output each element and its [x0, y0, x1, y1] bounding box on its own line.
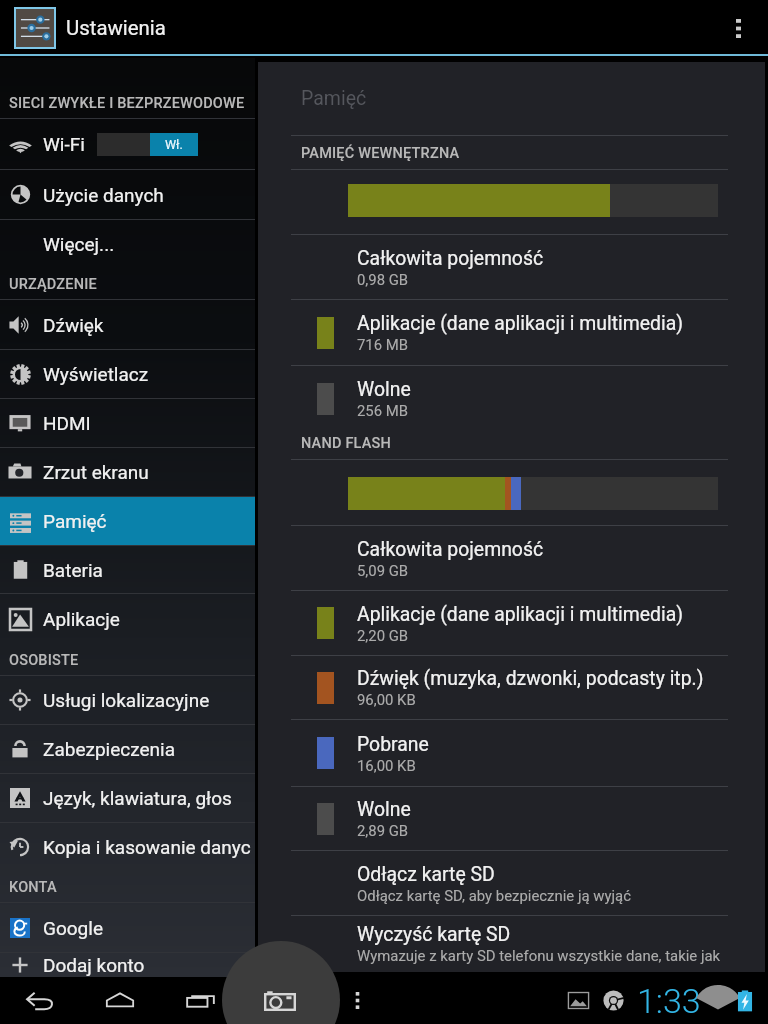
- staticText: Pamięć: [301, 87, 367, 110]
- button[interactable]: HDMI: [0, 399, 255, 447]
- staticText: Aplikacje (dane aplikacji i multimedia): [357, 603, 683, 626]
- staticText: Aplikacje (dane aplikacji i multimedia): [357, 312, 683, 335]
- staticText: Wolne: [357, 378, 411, 401]
- button[interactable]: Camera: [256, 977, 304, 1024]
- button[interactable]: Kopia i kasowanie danyc: [0, 823, 255, 871]
- button[interactable]: Dodaj konto: [0, 953, 255, 977]
- button[interactable]: Użycie danych: [0, 170, 255, 219]
- staticText: 2,20 GB: [357, 627, 409, 644]
- staticText: 16,00 KB: [357, 757, 416, 774]
- staticText: Google: [43, 917, 103, 939]
- staticText: Wi-Fi: [43, 133, 85, 155]
- staticText: Odłącz kartę SD, aby bezpiecznie ją wyją…: [357, 887, 631, 904]
- staticText: Wł.: [165, 137, 183, 152]
- staticText: Całkowita pojemność: [357, 538, 544, 561]
- staticText: Zabezpieczenia: [43, 738, 175, 760]
- staticText: Pobrane: [357, 733, 429, 756]
- staticText: HDMI: [43, 412, 91, 434]
- button[interactable]: Usługi lokalizacyjne: [0, 676, 255, 724]
- staticText: Wyczyść kartę SD: [357, 923, 511, 946]
- staticText: Bateria: [43, 559, 103, 581]
- button[interactable]: Wł.: [97, 133, 198, 156]
- button[interactable]: Pobrane: [258, 720, 765, 786]
- button[interactable]: Wolne: [258, 787, 765, 850]
- button[interactable]: Zabezpieczenia: [0, 725, 255, 773]
- button[interactable]: Settings: [16, 9, 54, 47]
- button[interactable]: Home: [96, 977, 144, 1024]
- staticText: SIECI ZWYKŁE I BEZPRZEWODOWE: [9, 95, 245, 112]
- button[interactable]: Recent apps: [176, 977, 224, 1024]
- staticText: 2,89 GB: [357, 822, 409, 839]
- button[interactable]: Wi-Fi: [0, 119, 255, 169]
- button[interactable]: Bateria: [0, 546, 255, 593]
- button[interactable]: Google: [0, 903, 255, 952]
- staticText: Dodaj konto: [43, 954, 145, 976]
- staticText: Ustawienia: [66, 16, 166, 40]
- staticText: Usługi lokalizacyjne: [43, 689, 210, 711]
- staticText: 716 MB: [357, 336, 409, 353]
- staticText: Odłącz kartę SD: [357, 863, 495, 886]
- staticText: Pamięć: [43, 510, 107, 532]
- staticText: 96,00 KB: [357, 691, 416, 708]
- staticText: Kopia i kasowanie danyc: [43, 836, 251, 858]
- staticText: KONTA: [9, 879, 57, 896]
- staticText: 1:33: [637, 981, 701, 1021]
- button[interactable]: More options: [720, 10, 756, 46]
- staticText: Zrzut ekranu: [43, 461, 149, 483]
- staticText: Dźwięk: [43, 314, 104, 336]
- button[interactable]: Całkowita pojemność: [258, 235, 765, 299]
- button[interactable]: Back: [15, 977, 63, 1024]
- staticText: Całkowita pojemność: [357, 247, 544, 270]
- button[interactable]: Dźwięk: [0, 300, 255, 349]
- button[interactable]: Wyczyść kartę SD: [258, 916, 765, 970]
- staticText: Użycie danych: [43, 184, 164, 206]
- button[interactable]: Dźwięk (muzyka, dzwonki, podcasty itp.): [258, 656, 765, 719]
- staticText: Wymazuje z karty SD telefonu wszystkie d…: [357, 947, 721, 964]
- button[interactable]: Więcej...: [0, 220, 255, 268]
- staticText: Więcej...: [43, 233, 115, 255]
- staticText: Wyświetlacz: [43, 363, 149, 385]
- staticText: Język, klawiatura, głos: [43, 787, 232, 809]
- staticText: Wolne: [357, 798, 411, 821]
- button[interactable]: Pamięć: [0, 497, 255, 545]
- button[interactable]: Aplikacje (dane aplikacji i multimedia): [258, 300, 765, 365]
- staticText: OSOBISTE: [9, 652, 79, 669]
- staticText: 256 MB: [357, 402, 409, 419]
- staticText: Aplikacje: [43, 608, 120, 630]
- button[interactable]: Język, klawiatura, głos: [0, 774, 255, 822]
- staticText: Dźwięk (muzyka, dzwonki, podcasty itp.): [357, 667, 704, 690]
- staticText: 0,98 GB: [357, 271, 409, 288]
- button[interactable]: Zrzut ekranu: [0, 448, 255, 496]
- button[interactable]: Menu: [333, 977, 381, 1024]
- staticText: NAND FLASH: [301, 435, 392, 452]
- staticText: 5,09 GB: [357, 562, 409, 579]
- button[interactable]: Aplikacje (dane aplikacji i multimedia): [258, 591, 765, 655]
- staticText: PAMIĘĆ WEWNĘTRZNA: [301, 145, 460, 162]
- staticText: URZĄDZENIE: [9, 276, 97, 293]
- button[interactable]: Aplikacje: [0, 594, 255, 644]
- button[interactable]: Wolne: [258, 366, 765, 431]
- button[interactable]: Wyświetlacz: [0, 350, 255, 398]
- button[interactable]: Odłącz kartę SD: [258, 851, 765, 915]
- button[interactable]: Całkowita pojemność: [258, 526, 765, 590]
